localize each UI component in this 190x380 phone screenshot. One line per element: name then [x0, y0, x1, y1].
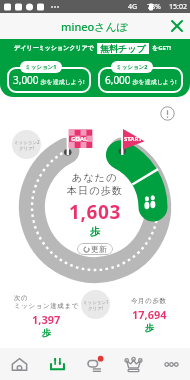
staticText: 今月の歩数: [131, 297, 167, 305]
staticText: 73%: [147, 2, 161, 12]
staticText: 歩: [42, 327, 51, 338]
staticText: 15:02: [169, 2, 187, 12]
button[interactable]: Home: [0, 348, 38, 380]
staticText: 6,000: [105, 73, 131, 87]
staticText: ミッション2: [116, 63, 148, 71]
button[interactable]: Chat: [76, 348, 114, 380]
staticText: 1,397: [32, 312, 61, 327]
staticText: 本日の歩数: [67, 184, 124, 197]
staticText: mineoさんぽ: [61, 19, 129, 34]
staticText: 歩: [90, 225, 100, 238]
staticText: GOAL: [71, 135, 88, 143]
staticText: 3,000: [13, 73, 39, 87]
button[interactable]: Help: [160, 106, 175, 121]
staticText: をGET!: [152, 44, 171, 52]
staticText: 更新: [91, 244, 107, 254]
button[interactable]: Close: [164, 13, 190, 39]
staticText: 4G: [128, 2, 138, 12]
button[interactable]: Data: [38, 348, 76, 380]
staticText: ミッション1: [25, 63, 57, 71]
button[interactable]: 更新: [77, 243, 113, 255]
staticText: ミッション2: [14, 139, 40, 145]
button[interactable]: 6,000: [98, 67, 183, 93]
button[interactable]: Rank: [114, 348, 152, 380]
staticText: ミッション達成まで: [14, 302, 79, 310]
staticText: 無料チップ: [100, 43, 146, 54]
staticText: 1,603: [69, 199, 121, 225]
staticText: 歩を達成しよう!: [39, 78, 85, 86]
staticText: あなたの: [72, 171, 118, 184]
staticText: 次の: [14, 294, 29, 302]
staticText: クリア!: [19, 145, 35, 151]
button[interactable]: ミッション2: [12, 130, 41, 159]
staticText: クリア!: [88, 305, 104, 311]
staticText: デイリーミッションクリアで: [14, 44, 94, 52]
staticText: START: [124, 135, 142, 143]
button[interactable]: More: [152, 348, 190, 380]
staticText: 歩: [145, 322, 154, 333]
staticText: ミッション1: [83, 299, 109, 305]
staticText: 歩を達成しよう!: [131, 78, 177, 86]
button[interactable]: ミッション1: [81, 290, 110, 319]
staticText: 17,694: [132, 307, 167, 322]
button[interactable]: 3,000: [7, 67, 91, 93]
